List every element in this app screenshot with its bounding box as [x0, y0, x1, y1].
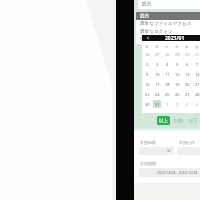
button[interactable]: 9 [142, 69, 152, 79]
button[interactable]: 29 [172, 49, 182, 59]
staticText: 24 [155, 92, 160, 97]
button[interactable]: 10 [152, 69, 162, 79]
staticText: 以上 [159, 118, 168, 124]
staticText: 5 [176, 62, 179, 67]
staticText: 30 [185, 52, 190, 57]
staticText: 27 [185, 92, 190, 97]
button[interactable]: 2023/12/04 - 2023/12/24 [139, 168, 200, 177]
button[interactable]: Previous month [142, 35, 153, 41]
staticText: 7 [196, 62, 199, 67]
button[interactable]: 6 [182, 59, 192, 69]
staticText: 3 [156, 62, 159, 67]
staticText: 26 [145, 52, 150, 57]
button[interactable]: 21 [192, 79, 200, 89]
staticText: 2 [146, 62, 149, 67]
button[interactable]: 18 [162, 79, 172, 89]
staticText: 2023/01 [165, 35, 185, 41]
staticText: 26 [175, 92, 180, 97]
button[interactable]: 17 [152, 79, 162, 89]
staticText: 火 [165, 45, 169, 49]
button[interactable]: 23 [142, 89, 152, 99]
staticText: 金 [195, 45, 199, 49]
staticText: 29 [175, 52, 180, 57]
button[interactable]: 総合 [138, 0, 200, 9]
button[interactable]: 14 [192, 69, 200, 79]
staticText: 17 [155, 82, 160, 87]
staticText: 日 [145, 45, 149, 49]
button[interactable]: 12 [172, 69, 182, 79]
staticText: 総合 [142, 1, 152, 7]
staticText: 27 [155, 52, 160, 57]
staticText: 10 [155, 72, 160, 77]
staticText: 28 [195, 92, 200, 97]
button[interactable]: 4 [192, 99, 200, 109]
button[interactable]: 不審なアクセス [136, 36, 200, 44]
button[interactable]: 20 [182, 79, 192, 89]
button[interactable]: 24 [152, 89, 162, 99]
button[interactable]: 25 [162, 89, 172, 99]
staticText: 4 [166, 62, 169, 67]
staticText: 30 [145, 102, 150, 107]
button[interactable]: 7 [192, 59, 200, 69]
button[interactable]: 2 [142, 59, 152, 69]
button[interactable]: 27 [182, 89, 192, 99]
staticText: 28 [165, 52, 170, 57]
button[interactable]: 3 [152, 59, 162, 69]
button[interactable]: 26 [172, 89, 182, 99]
staticText: 水 [175, 45, 179, 49]
button[interactable]: 31 [152, 99, 162, 109]
staticText: 2023/12/04 - 2023/12/24 [157, 170, 198, 175]
staticText: 20 [185, 82, 190, 87]
staticText: 16 [145, 82, 150, 87]
staticText: 11 [165, 72, 170, 77]
button[interactable]: 2 [172, 99, 182, 109]
button[interactable]: 異常なファイルアクセス [136, 20, 200, 28]
button[interactable]: 16 [142, 79, 152, 89]
staticText: 19 [175, 82, 180, 87]
button[interactable]: 13 [182, 69, 192, 79]
staticText: 18 [165, 82, 170, 87]
staticText: 12 [175, 72, 180, 77]
staticText: 回 [167, 149, 171, 153]
button[interactable]: 11 [162, 69, 172, 79]
button[interactable]: 28 [192, 89, 200, 99]
staticText: 学習期間 [140, 161, 156, 166]
button[interactable]: 30 [142, 99, 152, 109]
button[interactable]: 27 [152, 49, 162, 59]
staticText: 異常なログイン [140, 29, 173, 35]
staticText: 3 [186, 102, 189, 107]
staticText: 31 [155, 102, 160, 107]
staticText: 21 [195, 82, 200, 87]
staticText: 14 [195, 72, 200, 77]
button[interactable]: 以内 [173, 116, 183, 125]
staticText: 25 [165, 92, 170, 97]
button[interactable]: 28 [162, 49, 172, 59]
staticText: 不審なアクセス [140, 37, 173, 43]
button[interactable]: 19 [172, 79, 182, 89]
button[interactable]: 30 [182, 49, 192, 59]
staticText: 2 [176, 102, 179, 107]
button[interactable]: 1 [162, 99, 172, 109]
staticText: 月 [155, 45, 159, 49]
button[interactable]: 4 [162, 59, 172, 69]
button[interactable]: 31 [192, 49, 200, 59]
button[interactable]: 総合 [136, 12, 200, 20]
button[interactable]: 以下 [188, 116, 198, 125]
staticText: 学習回数 [140, 140, 156, 145]
button[interactable]: 3 [182, 99, 192, 109]
button[interactable]: 以上 [157, 116, 170, 125]
button[interactable]: 5 [172, 59, 182, 69]
button[interactable]: 回 [139, 147, 174, 155]
staticText: 木 [185, 45, 189, 49]
staticText: 学習の作 [179, 140, 196, 145]
staticText: 9 [146, 72, 149, 77]
staticText: 1 [166, 102, 169, 107]
button[interactable]: 26 [142, 49, 152, 59]
staticText: 23 [145, 92, 150, 97]
staticText: 異常なファイルアクセス [140, 21, 192, 27]
staticText: 以下 [189, 118, 198, 124]
staticText: 総合 [140, 13, 150, 19]
button[interactable]: 異常なログイン [136, 28, 200, 36]
staticText: 6 [186, 62, 189, 67]
